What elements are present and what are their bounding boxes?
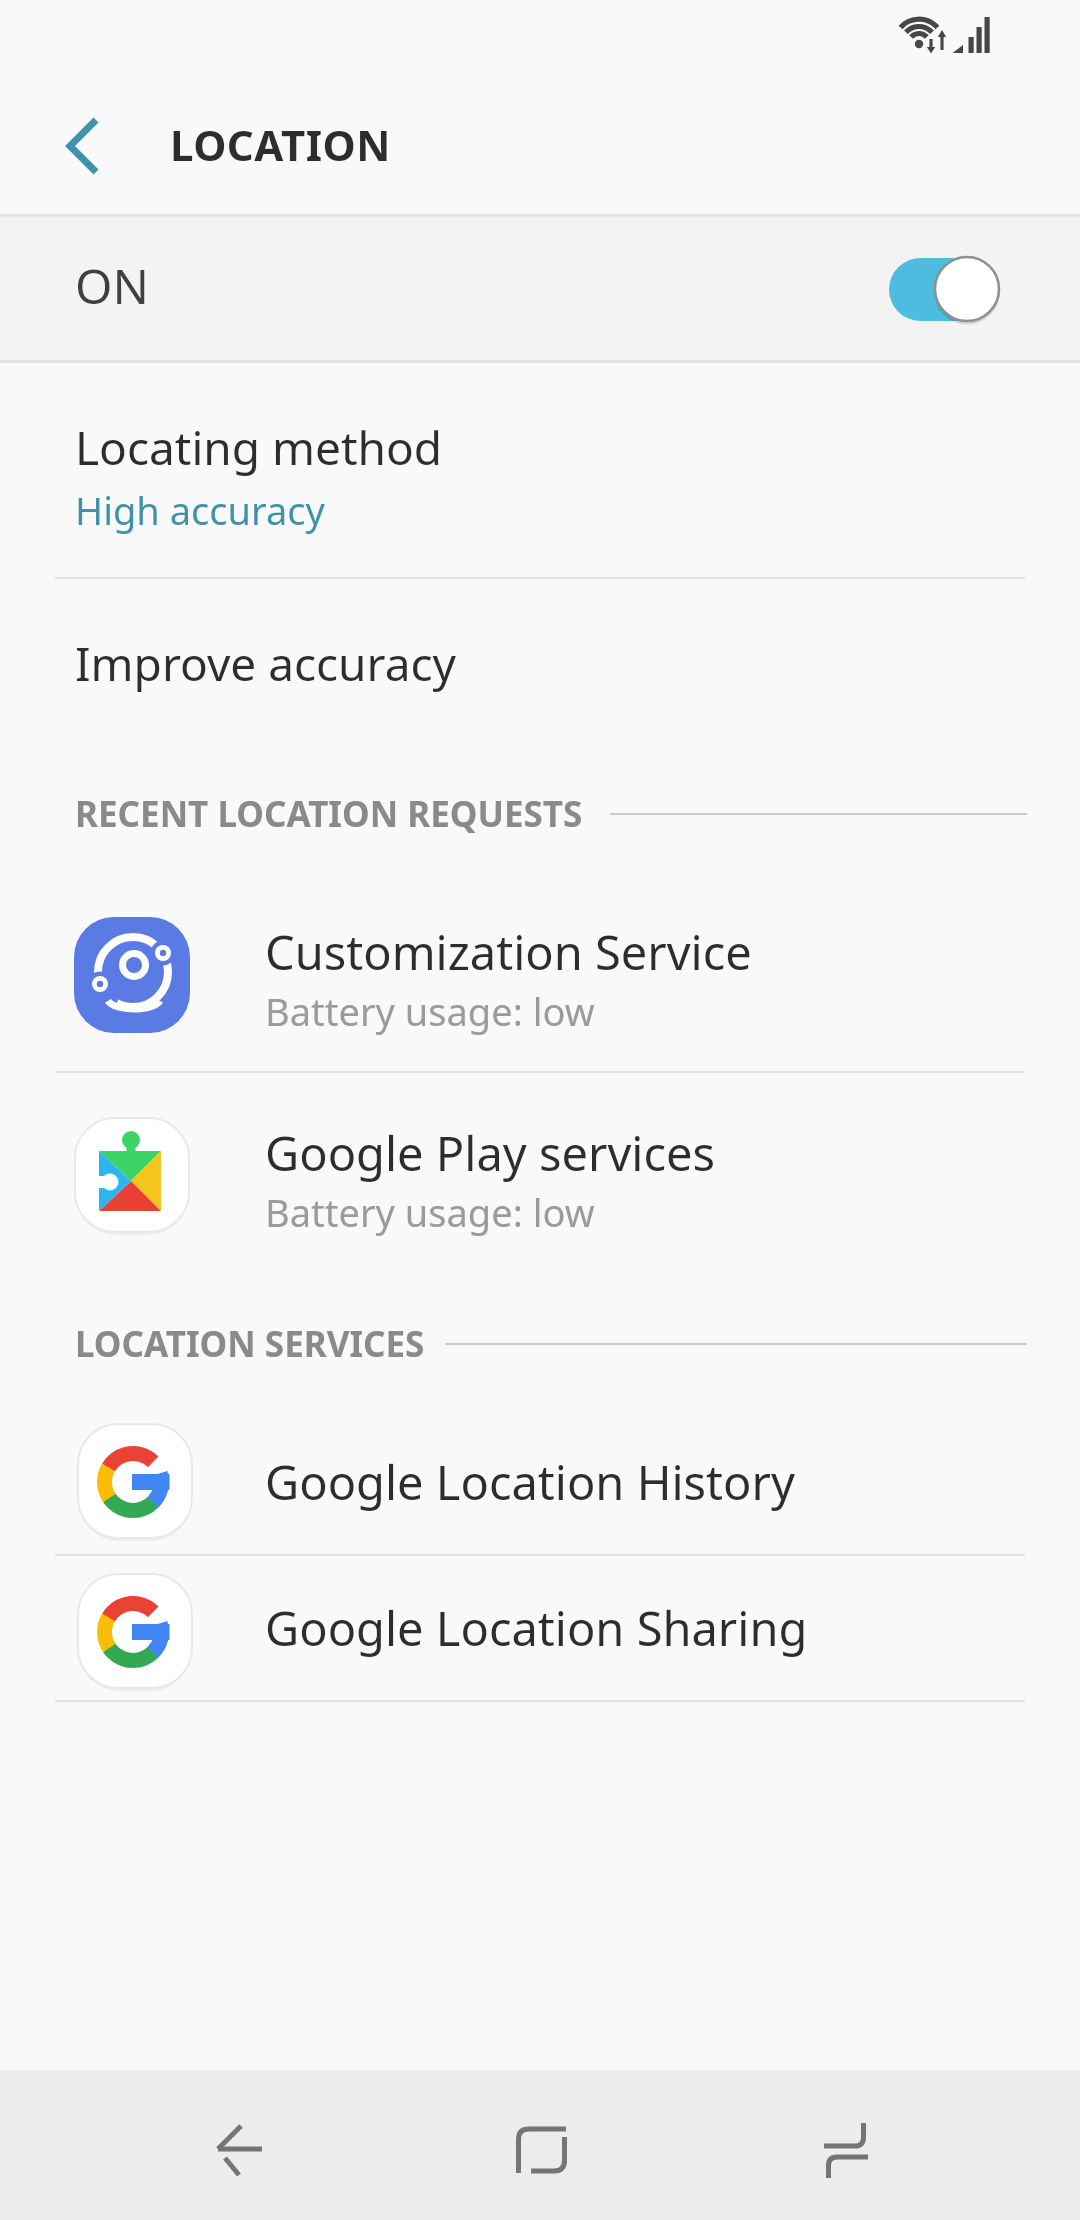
button[interactable] <box>40 100 132 192</box>
staticText: ON <box>75 253 149 318</box>
staticText: Battery usage: low <box>265 1186 595 1238</box>
staticText: LOCATION <box>170 116 391 173</box>
staticText: Google Location History <box>265 1450 795 1514</box>
button[interactable]: Customization Service <box>0 890 1080 1071</box>
staticText: RECENT LOCATION REQUESTS <box>75 790 583 838</box>
button[interactable]: Locating method <box>0 363 1080 578</box>
staticText: Google Location Sharing <box>265 1596 808 1660</box>
button[interactable]: Improve accuracy <box>0 579 1080 739</box>
staticText: Improve accuracy <box>75 632 456 695</box>
staticText: Google Play services <box>265 1121 715 1185</box>
staticText: Locating method <box>75 416 443 479</box>
button[interactable] <box>460 2070 620 2220</box>
button[interactable]: ON <box>0 217 1080 360</box>
staticText: Customization Service <box>265 920 752 984</box>
button[interactable]: Google Play services <box>0 1073 1080 1263</box>
button[interactable] <box>766 2070 926 2220</box>
button[interactable]: Google Location Sharing <box>0 1556 1080 1700</box>
staticText: Battery usage: low <box>265 985 595 1037</box>
staticText: LOCATION SERVICES <box>75 1320 425 1368</box>
button[interactable]: Google Location History <box>0 1410 1080 1554</box>
button[interactable] <box>160 2070 320 2220</box>
staticText: High accuracy <box>75 484 325 536</box>
